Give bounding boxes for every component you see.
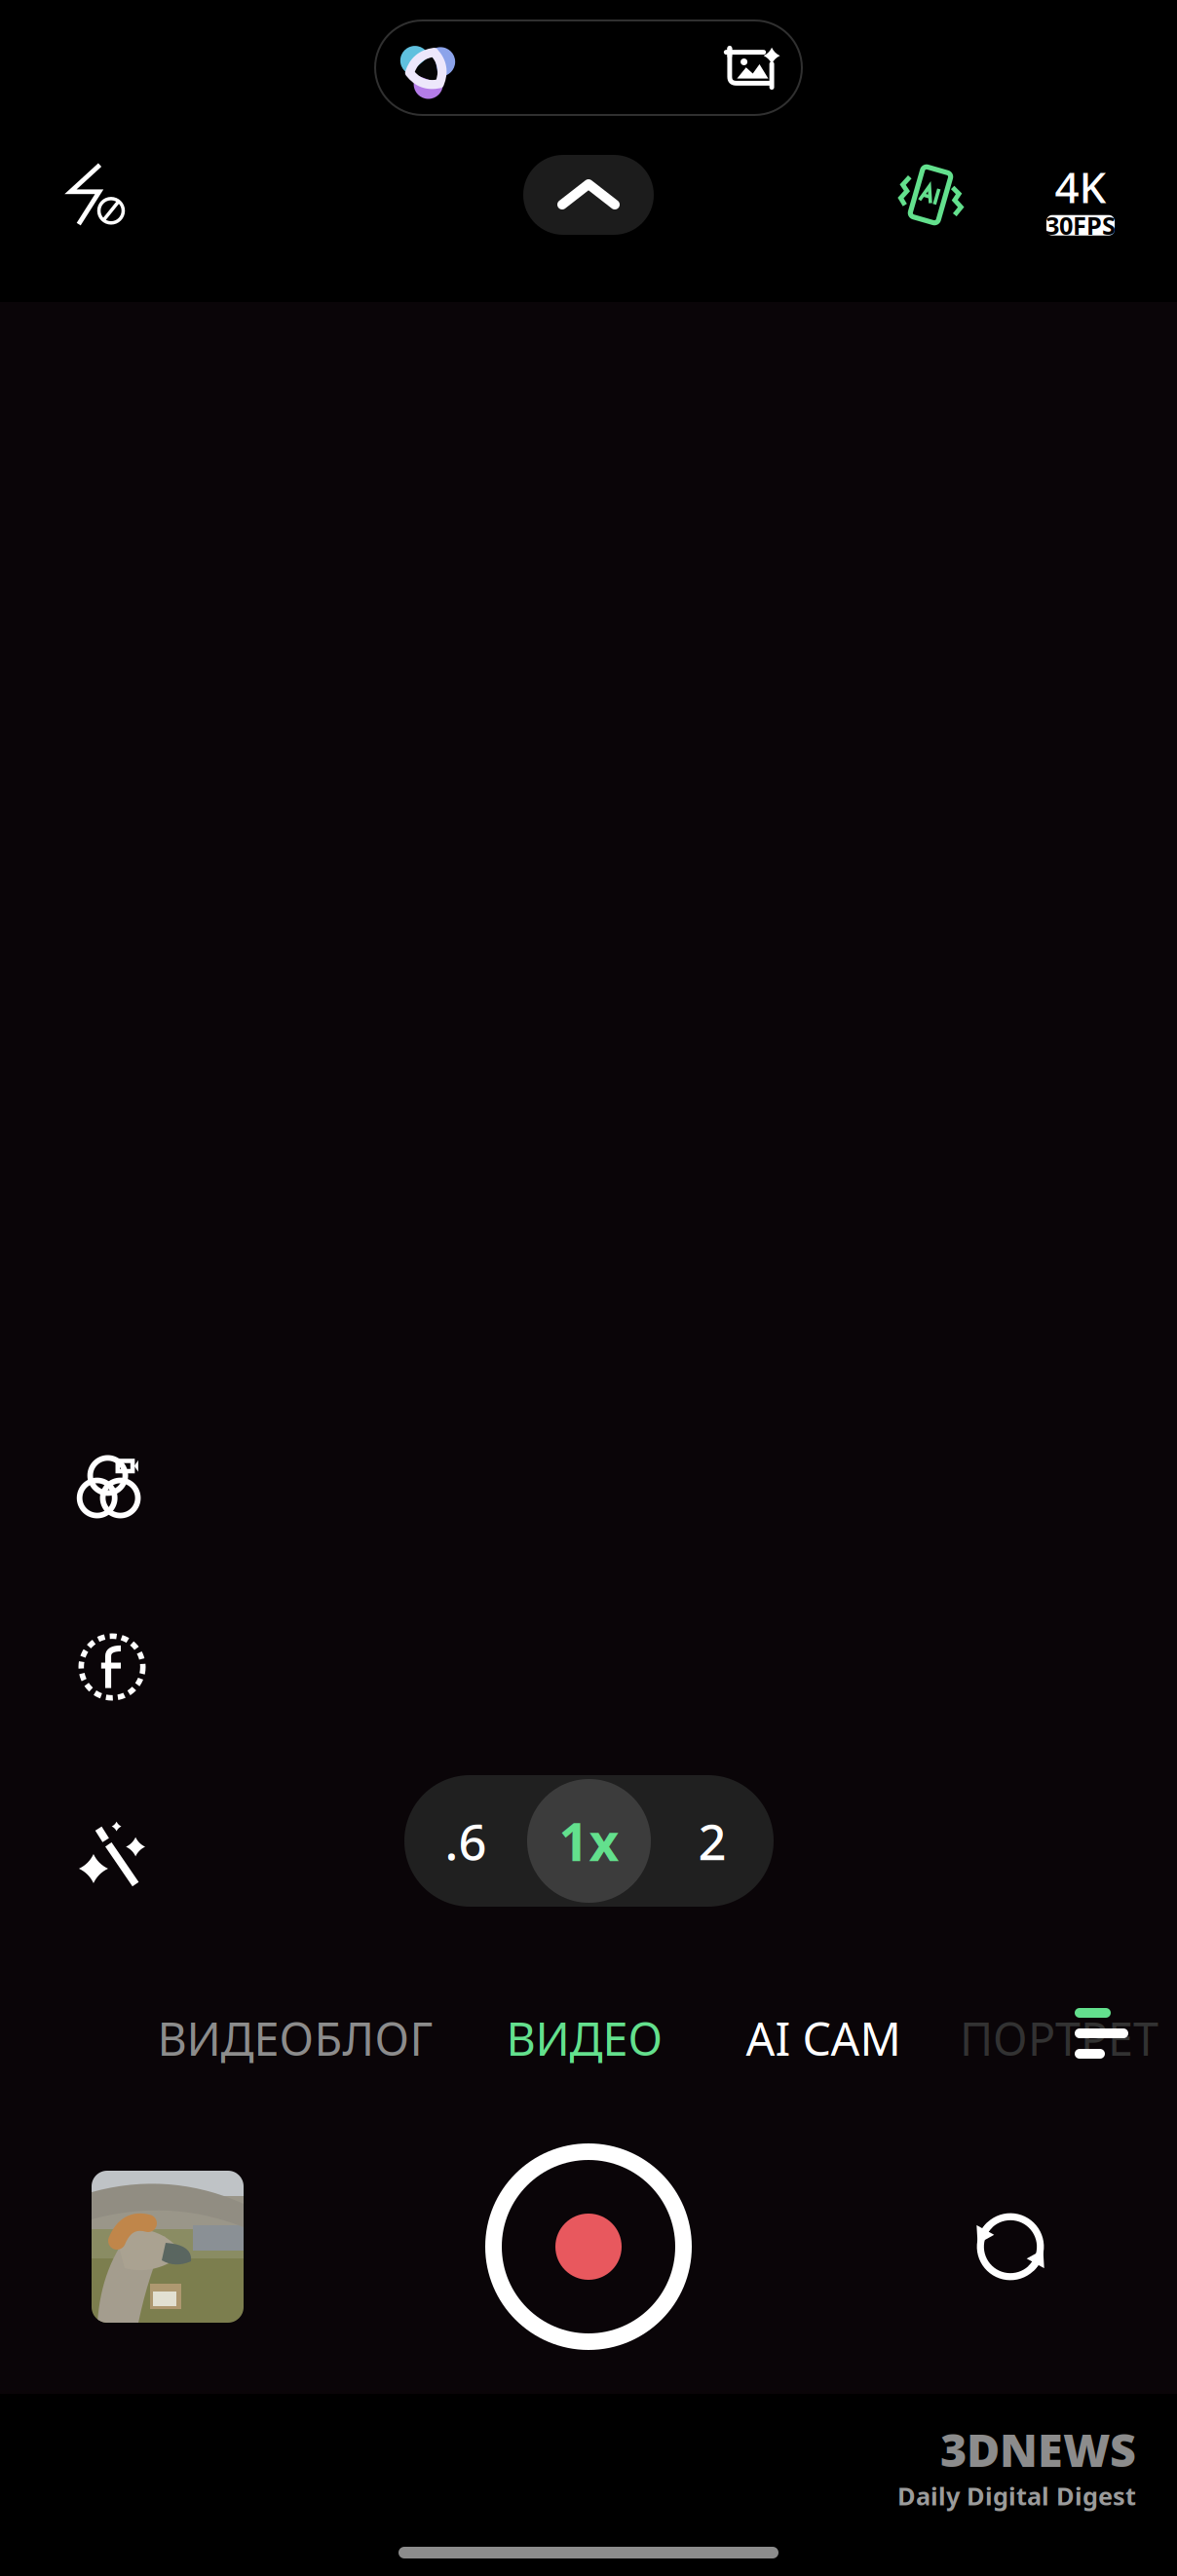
staticText: ВИДЕОБЛОГ [157,2008,433,2068]
button[interactable]: Open gallery [70,2149,265,2344]
button[interactable]: ВИДЕО [477,1993,692,2083]
staticText: 2 [698,1808,726,1874]
button[interactable]: Video quality 4K 30 FPS [1012,143,1149,250]
button[interactable]: ВИДЕОБЛОГ [139,1993,451,2083]
button[interactable]: ПОРТРЕТ [960,1993,1177,2083]
staticText: 30FPS [1045,209,1116,242]
staticText: ВИДЕО [506,2008,663,2068]
staticText: .6 [445,1808,487,1874]
button[interactable]: AI assistant [375,21,480,114]
staticText: 1x [559,1806,619,1875]
staticText: 4K [1055,158,1106,215]
button[interactable]: 1x [527,1775,651,1907]
staticText: 3DNEWS [940,2419,1136,2480]
button[interactable]: Aperture [54,1609,171,1725]
button[interactable]: Enhance image [697,21,802,114]
button[interactable]: Start recording [472,2130,705,2364]
button[interactable]: AI enhancement [872,141,989,248]
button[interactable]: AI CAM [716,1993,930,2083]
button[interactable]: 2 [651,1775,774,1907]
button[interactable]: .6 [404,1775,527,1907]
staticText: AI CAM [746,2008,901,2068]
button[interactable]: Flash off [37,141,154,248]
button[interactable]: Switch camera [923,2159,1098,2334]
button[interactable]: Show more settings [523,155,654,235]
staticText: Daily Digital Digest [897,2480,1136,2512]
button[interactable]: Multi camera [54,1429,171,1546]
button[interactable]: Effects [54,1796,171,1913]
staticText: ПОРТРЕТ [960,2008,1158,2068]
button[interactable]: More modes [1075,1989,1172,2078]
